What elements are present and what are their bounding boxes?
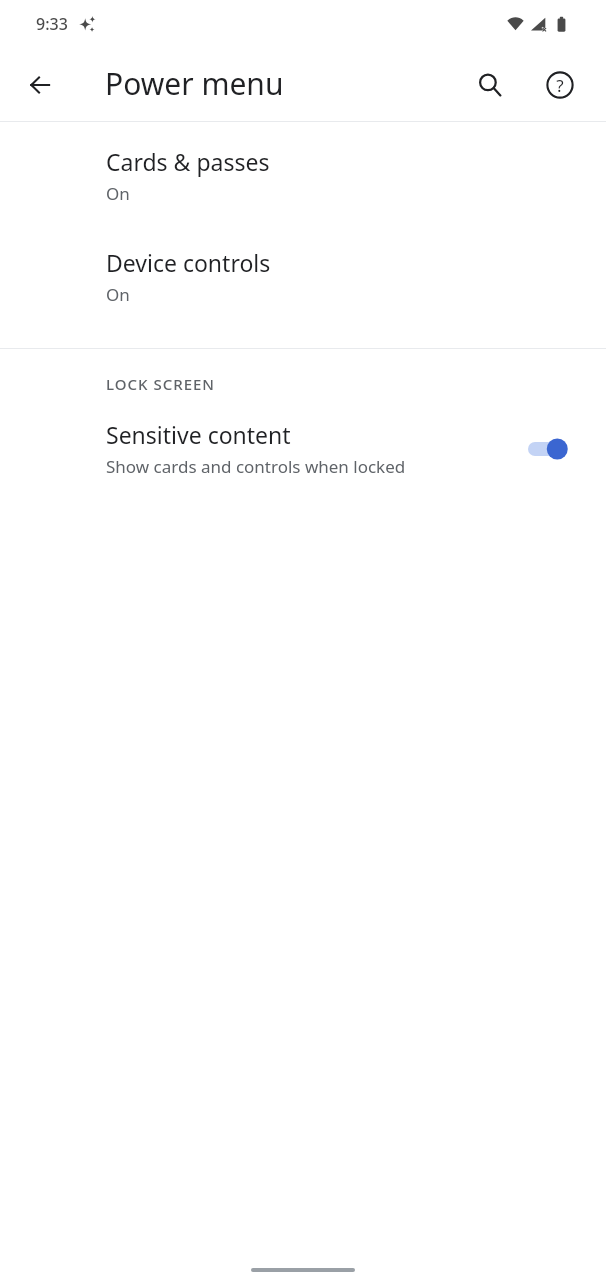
staticText: Cards & passes [106, 146, 270, 177]
button[interactable]: Help [536, 61, 584, 109]
button[interactable]: Search [466, 61, 514, 109]
staticText: 9:33 [36, 13, 68, 35]
staticText: On [106, 283, 130, 306]
button[interactable]: Back [16, 61, 64, 109]
button[interactable]: Cards & passes [0, 142, 606, 209]
staticText: On [106, 182, 130, 205]
staticText: Device controls [106, 247, 271, 278]
staticText: Power menu [105, 63, 284, 104]
button[interactable]: Sensitive content toggle [526, 427, 582, 471]
button[interactable]: Sensitive content [0, 419, 606, 478]
button[interactable]: Device controls [0, 243, 606, 310]
staticText: ? [556, 74, 564, 97]
staticText: LOCK SCREEN [106, 374, 215, 394]
staticText: Show cards and controls when locked [106, 455, 406, 478]
staticText: Sensitive content [106, 419, 291, 450]
